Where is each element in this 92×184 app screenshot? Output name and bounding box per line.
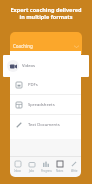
staticText: Notes bbox=[56, 169, 64, 173]
staticText: Expert coaching delivered in multiple fo… bbox=[9, 6, 83, 20]
button[interactable]: Write bbox=[67, 157, 81, 177]
staticText: Videos bbox=[22, 63, 36, 69]
button[interactable]: Videos bbox=[3, 55, 89, 77]
button[interactable]: Text Documents bbox=[10, 115, 81, 134]
staticText: Coaching bbox=[13, 43, 33, 49]
staticText: Write bbox=[71, 169, 78, 173]
staticText: Spreadsheets bbox=[28, 102, 55, 108]
staticText: PDFs bbox=[28, 82, 38, 88]
staticText: Inbox bbox=[14, 169, 21, 173]
button[interactable]: Jobs bbox=[25, 157, 39, 177]
button[interactable]: PDFs bbox=[10, 75, 81, 94]
button[interactable]: Inbox bbox=[10, 157, 25, 177]
button[interactable]: Notes bbox=[53, 157, 67, 177]
button[interactable]: Spreadsheets bbox=[10, 95, 81, 114]
staticText: Progress bbox=[41, 169, 52, 173]
staticText: Jobs bbox=[29, 169, 35, 173]
button[interactable]: Progress bbox=[39, 157, 53, 177]
button[interactable]: Coaching bbox=[10, 32, 82, 54]
staticText: Text Documents bbox=[28, 122, 60, 128]
